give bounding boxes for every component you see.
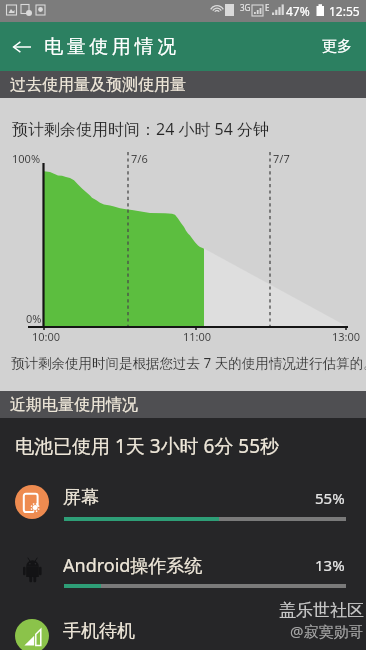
- staticText: 预计剩余使用时间：24 小时 54 分钟: [12, 118, 270, 140]
- button[interactable]: 屏幕: [0, 485, 366, 545]
- staticText: 盖乐世社区: [279, 600, 364, 621]
- button[interactable]: Android操作系统: [0, 552, 366, 612]
- staticText: 13%: [315, 555, 345, 575]
- button[interactable]: 手机待机: [0, 619, 366, 650]
- staticText: 55%: [315, 488, 345, 508]
- staticText: 0%: [26, 311, 42, 326]
- staticText: 近期电量使用情况: [10, 395, 138, 415]
- staticText: 电量使用情况: [44, 35, 180, 59]
- staticText: 屏幕: [63, 486, 99, 509]
- staticText: 13:00: [332, 329, 361, 344]
- staticText: 7/7: [273, 151, 290, 166]
- staticText: 7/6: [131, 151, 148, 166]
- staticText: 12:55: [329, 3, 360, 19]
- staticText: 过去使用量及预测使用量: [10, 75, 186, 95]
- button[interactable]: Back: [0, 25, 44, 69]
- staticText: 3G: [240, 2, 251, 13]
- staticText: Android操作系统: [63, 553, 203, 578]
- staticText: 10:00: [32, 329, 61, 344]
- button[interactable]: 更多: [308, 37, 366, 56]
- staticText: 更多: [322, 37, 352, 56]
- staticText: @寂寞勋哥: [290, 621, 364, 641]
- staticText: E: [265, 2, 270, 13]
- staticText: 手机待机: [63, 620, 135, 643]
- staticText: 47%: [286, 3, 310, 19]
- staticText: 预计剩余使用时间是根据您过去 7 天的使用情况进行估算的。: [11, 354, 366, 372]
- staticText: 100%: [12, 151, 41, 166]
- staticText: 11:00: [183, 329, 212, 344]
- staticText: 电池已使用 1天 3小时 6分 55秒: [15, 433, 280, 459]
